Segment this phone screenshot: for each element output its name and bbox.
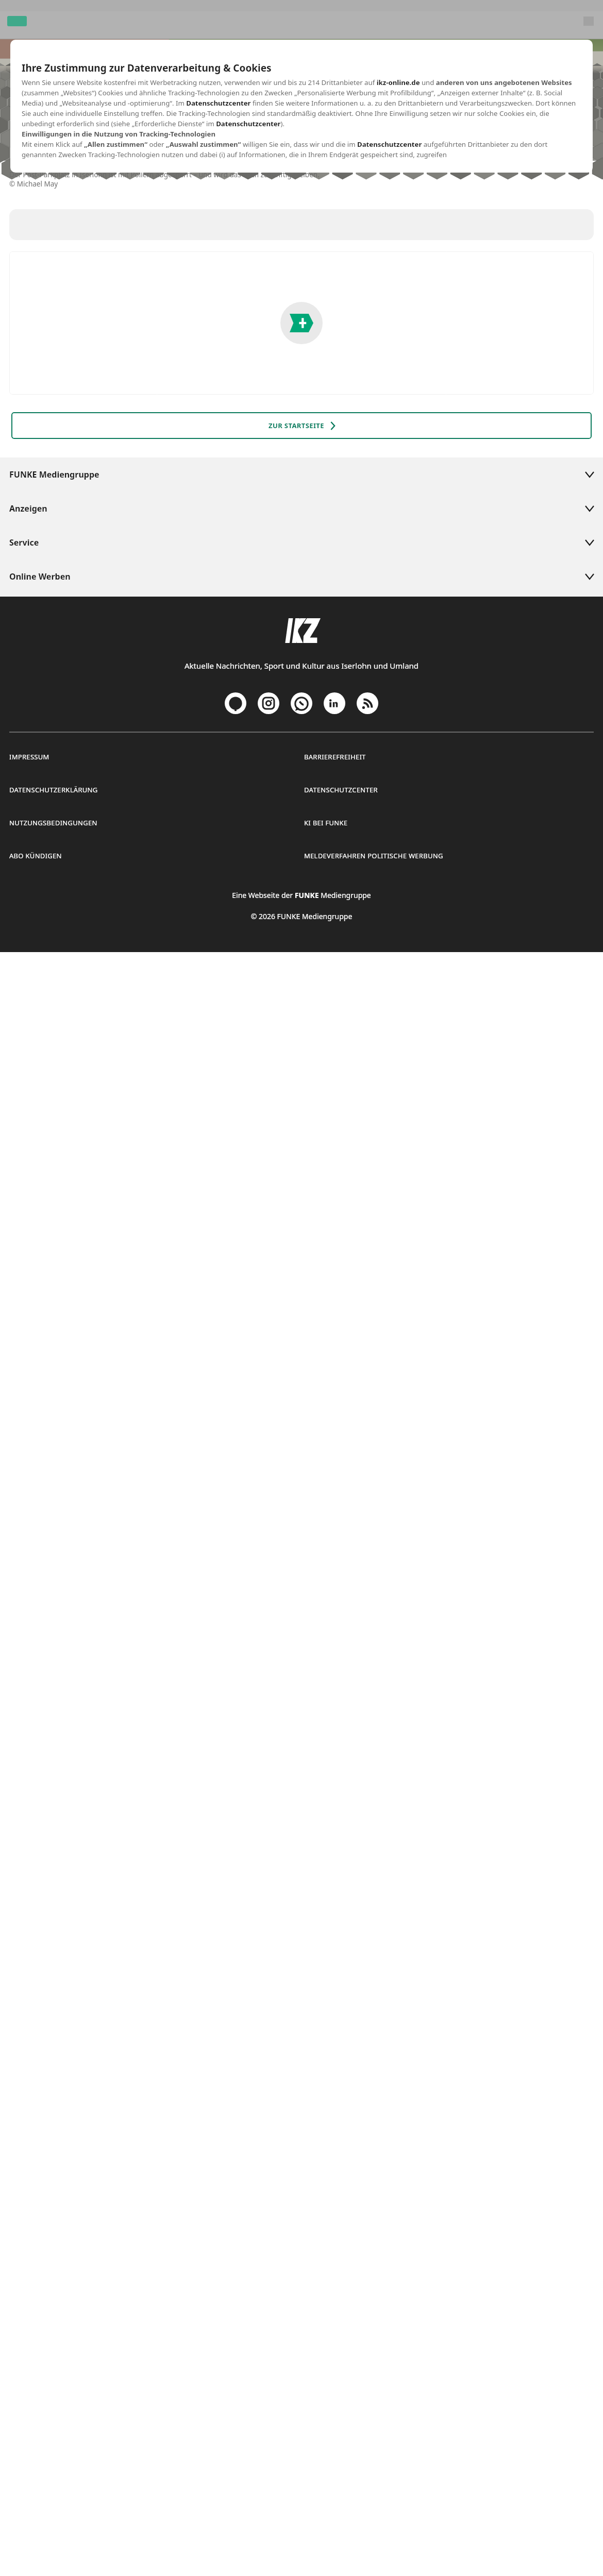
staticText: NUTZUNGSBEDINGUNGEN	[9, 818, 97, 827]
button[interactable]: Facebook	[225, 692, 246, 714]
staticText: DATENSCHUTZERKLÄRUNG	[9, 785, 98, 794]
button[interactable]: ABO KÜNDIGEN	[9, 851, 299, 860]
button[interactable]: RSS	[357, 692, 378, 714]
staticText: DATENSCHUTZCENTER	[304, 785, 378, 794]
staticText: ZUR STARTSEITE	[269, 421, 324, 430]
button[interactable]: LinkedIn	[324, 692, 345, 714]
button[interactable]: NUTZUNGSBEDINGUNGEN	[9, 818, 299, 827]
button[interactable]: ZUR STARTSEITE	[11, 412, 592, 439]
staticText: ABO KÜNDIGEN	[9, 851, 62, 860]
staticText: Wenn Sie unsere Website kostenfrei mit W…	[22, 78, 581, 159]
staticText: Eine Webseite der FUNKE Mediengruppe	[0, 890, 603, 900]
staticText: © 2026 FUNKE Mediengruppe	[0, 911, 603, 921]
button[interactable]: Plus Angebot	[280, 302, 323, 344]
staticText: Service	[9, 537, 39, 548]
button[interactable]: Online Werben	[0, 560, 603, 594]
button[interactable]: DATENSCHUTZCENTER	[304, 785, 594, 794]
button[interactable]: FUNKE Mediengruppe	[0, 457, 603, 492]
staticText: FUNKE Mediengruppe	[9, 469, 99, 480]
button[interactable]: KI BEI FUNKE	[304, 818, 594, 827]
button[interactable]: MELDEVERFAHREN POLITISCHE WERBUNG	[304, 851, 594, 860]
staticText: KI BEI FUNKE	[304, 818, 348, 827]
staticText: © Michael May	[9, 179, 58, 189]
button[interactable]: Menu	[583, 16, 594, 26]
button[interactable]: IMPRESSUM	[9, 752, 299, 761]
staticText: MELDEVERFAHREN POLITISCHE WERBUNG	[304, 851, 443, 860]
staticText: BARRIEREFREIHEIT	[304, 752, 366, 761]
staticText: Ihre Zustimmung zur Datenverarbeitung & …	[22, 61, 272, 75]
staticText: Aktuelle Nachrichten, Sport und Kultur a…	[19, 660, 584, 671]
staticText: Online Werben	[9, 571, 71, 582]
button[interactable]: Instagram	[258, 692, 279, 714]
staticText: Anzeigen	[9, 503, 47, 514]
button[interactable]: WhatsApp	[291, 692, 312, 714]
button[interactable]: BARRIEREFREIHEIT	[304, 752, 594, 761]
button[interactable]: Logo	[7, 16, 27, 26]
staticText: Der Post-Parkplatz in Iserlohn ist mit P…	[9, 170, 320, 179]
staticText: IMPRESSUM	[9, 752, 49, 761]
button[interactable]: DATENSCHUTZERKLÄRUNG	[9, 785, 299, 794]
button[interactable]: Service	[0, 526, 603, 560]
button[interactable]: Anzeigen	[0, 492, 603, 526]
